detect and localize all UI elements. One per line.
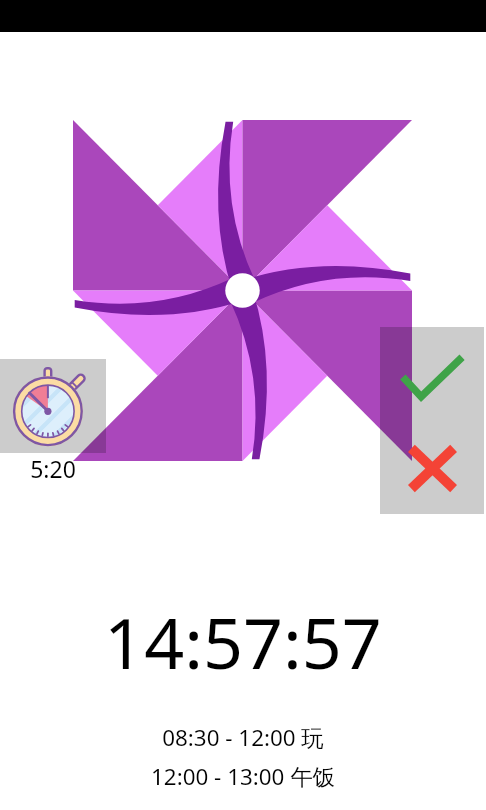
staticText: 08:30 - 12:00 玩	[0, 722, 486, 753]
staticText: 14:57:57	[0, 594, 486, 689]
button[interactable]	[0, 359, 106, 453]
staticText: 5:20	[0, 453, 106, 484]
staticText: 12:00 - 13:00 午饭	[0, 761, 486, 792]
button[interactable]: Accept	[380, 327, 484, 421]
button[interactable]: Reject	[380, 421, 484, 514]
